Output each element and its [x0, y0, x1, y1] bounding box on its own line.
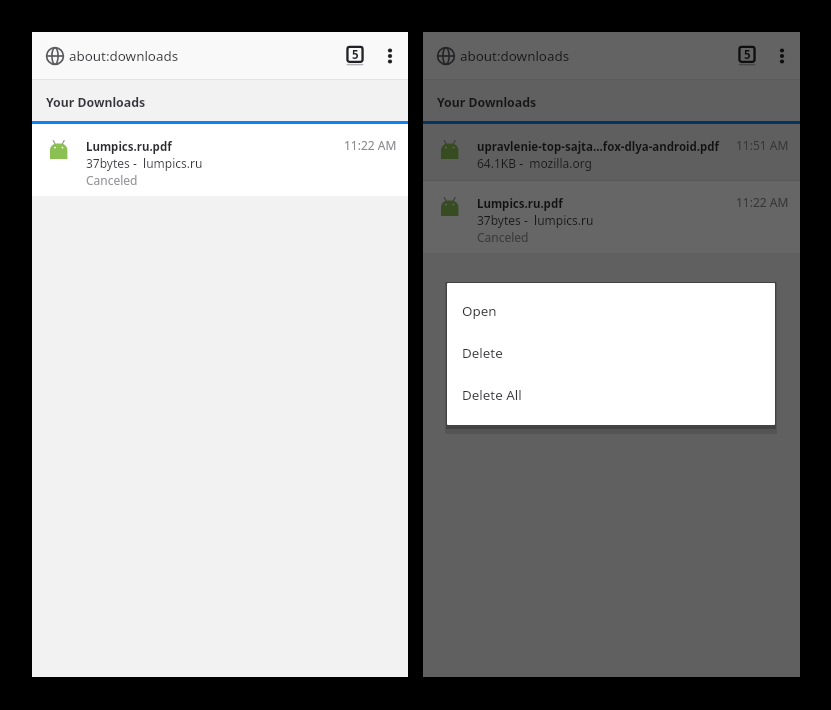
button[interactable]: Lumpics.ru.pdf	[32, 124, 408, 196]
staticText: 5	[744, 47, 751, 63]
staticText: Your Downloads	[46, 94, 146, 111]
button[interactable]: More options	[377, 32, 403, 80]
staticText: Delete	[462, 344, 503, 362]
button[interactable]: Tabs	[734, 32, 760, 80]
staticText: about:downloads	[69, 47, 179, 65]
staticText: Canceled	[477, 229, 529, 245]
staticText: Lumpics.ru.pdf	[86, 139, 172, 155]
staticText: Open	[462, 302, 497, 320]
staticText: 37bytes - lumpics.ru	[86, 155, 203, 171]
button[interactable]: upravlenie-top-sajta…fox-dlya-android.pd…	[423, 124, 800, 180]
staticText: 11:22 AM	[736, 194, 789, 210]
staticText: Delete All	[462, 386, 522, 404]
staticText: 5	[352, 47, 359, 63]
staticText: upravlenie-top-sajta…fox-dlya-android.pd…	[477, 139, 720, 155]
staticText: about:downloads	[460, 47, 570, 65]
button[interactable]: Open	[447, 290, 775, 332]
button[interactable]: Delete	[447, 332, 775, 374]
staticText: Lumpics.ru.pdf	[477, 196, 563, 212]
other: Site information	[435, 45, 457, 67]
staticText: 64.1KB - mozilla.org	[477, 155, 592, 171]
button[interactable]: Lumpics.ru.pdf	[423, 181, 800, 253]
staticText: 11:51 AM	[736, 137, 789, 153]
button[interactable]: Delete All	[447, 374, 775, 416]
staticText: Your Downloads	[437, 94, 537, 111]
other: Site information	[44, 45, 66, 67]
button[interactable]: More options	[769, 32, 795, 80]
staticText: Canceled	[86, 172, 138, 188]
staticText: 37bytes - lumpics.ru	[477, 212, 594, 228]
button[interactable]: Tabs	[342, 32, 368, 80]
staticText: 11:22 AM	[344, 137, 397, 153]
